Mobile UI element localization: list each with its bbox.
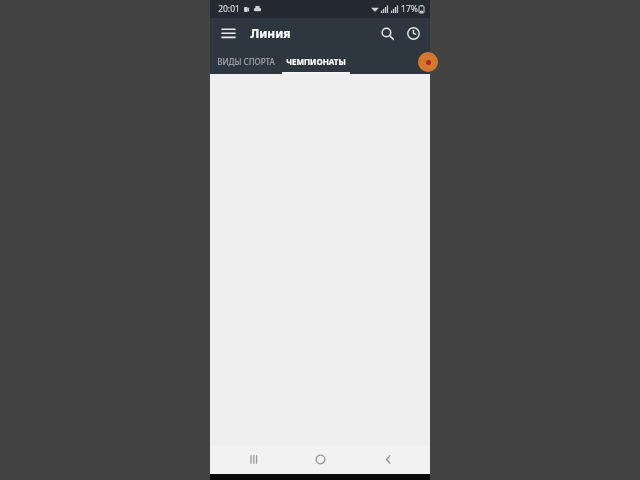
button[interactable]: Recents [228,445,278,474]
button[interactable]: Home [295,445,345,474]
staticText: Линия [250,25,291,41]
staticText: ВИДЫ СПОРТА [217,56,275,67]
staticText: ЧЕМПИОНАТЫ [286,56,346,67]
button[interactable]: Back [363,445,413,474]
staticText: 20:01 [218,3,240,15]
button[interactable]: ЧЕМПИОНАТЫ [282,48,350,74]
button[interactable]: Menu [216,21,240,45]
staticText: 17% [401,3,418,15]
button[interactable]: ВИДЫ СПОРТА [210,48,282,74]
button[interactable]: History [400,20,426,46]
button[interactable]: Search [374,20,400,46]
